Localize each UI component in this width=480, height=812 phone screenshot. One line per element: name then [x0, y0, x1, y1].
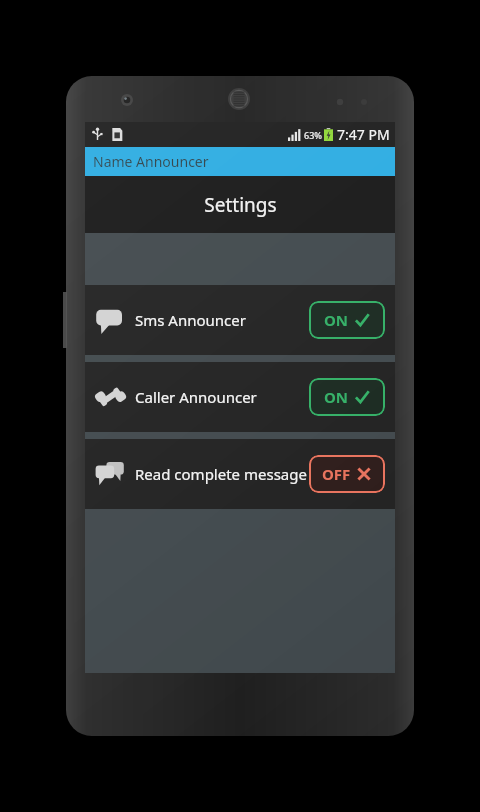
staticText: Name Announcer: [93, 152, 209, 171]
other: Messages: [95, 459, 125, 489]
button[interactable]: Toggle on: [309, 378, 385, 416]
button[interactable]: Message: [85, 285, 395, 355]
other: Call: [95, 382, 125, 412]
staticText: OFF: [322, 464, 351, 484]
other: Message: [95, 305, 125, 335]
staticText: 7:47 PM: [337, 125, 390, 144]
staticText: Read complete message: [135, 464, 309, 484]
button[interactable]: Call: [85, 362, 395, 432]
staticText: Caller Announcer: [135, 387, 309, 407]
staticText: 63%: [304, 129, 322, 141]
button[interactable]: Toggle on: [309, 301, 385, 339]
staticText: Sms Announcer: [135, 310, 309, 330]
button[interactable]: Toggle off: [309, 455, 385, 493]
button[interactable]: Messages: [85, 439, 395, 509]
staticText: Settings: [204, 192, 277, 218]
staticText: ON: [324, 387, 349, 407]
staticText: ON: [324, 310, 349, 330]
button[interactable]: Settings: [85, 176, 395, 233]
